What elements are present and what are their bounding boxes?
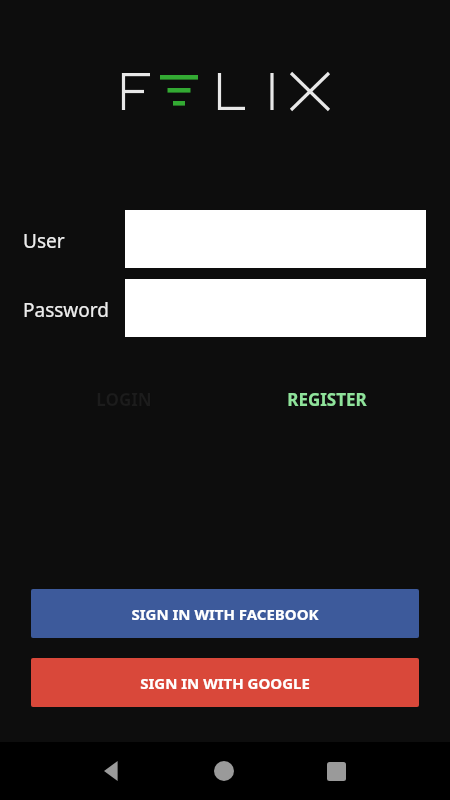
button[interactable]: REGISTER [281,382,373,416]
button[interactable]: LOGIN [78,382,170,416]
staticText: REGISTER [287,388,367,411]
button[interactable]: SIGN IN WITH GOOGLE [31,658,419,707]
staticText: SIGN IN WITH FACEBOOK [131,604,319,624]
staticText: User [23,228,65,254]
button[interactable]: Recent apps [310,745,362,797]
staticText: SIGN IN WITH GOOGLE [140,673,310,693]
staticText: Password [23,297,109,323]
staticText: LOGIN [96,388,152,411]
button[interactable]: SIGN IN WITH FACEBOOK [31,589,419,638]
button[interactable]: Home [198,745,250,797]
button[interactable]: Back [86,745,138,797]
